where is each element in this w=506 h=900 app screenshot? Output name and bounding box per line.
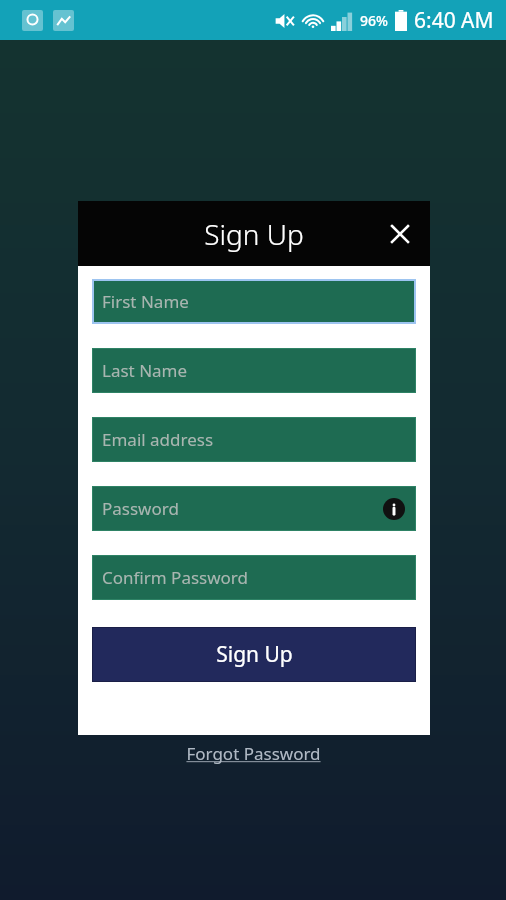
- staticText: Sign Up: [216, 640, 293, 669]
- button[interactable]: Confirm Password: [92, 555, 416, 600]
- staticText: Password: [102, 497, 179, 520]
- button[interactable]: Close: [380, 214, 420, 254]
- staticText: Last Name: [102, 359, 188, 382]
- button[interactable]: Forgot Password: [174, 736, 333, 771]
- button[interactable]: First Name: [92, 279, 416, 324]
- button[interactable]: Last Name: [92, 348, 416, 393]
- staticText: 6:40 AM: [414, 6, 494, 35]
- staticText: Forgot Password: [186, 742, 321, 765]
- staticText: Confirm Password: [102, 566, 248, 589]
- staticText: First Name: [102, 290, 189, 313]
- staticText: Village: [194, 235, 313, 289]
- button[interactable]: Sign Up: [92, 627, 416, 682]
- button[interactable]: Email address: [92, 417, 416, 462]
- button[interactable]: Password: [92, 486, 416, 531]
- staticText: Sign Up: [217, 664, 289, 691]
- button[interactable]: Password info: [382, 497, 406, 521]
- staticText: 96%: [360, 11, 388, 30]
- staticText: Email address: [102, 428, 214, 451]
- staticText: Sign Up: [204, 215, 304, 253]
